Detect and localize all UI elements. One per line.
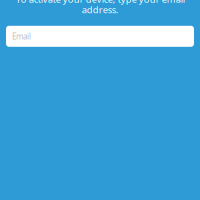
button[interactable]: Email address (6, 26, 194, 47)
staticText: address. (81, 3, 118, 16)
staticText: To activate your device, type your email (15, 0, 184, 5)
staticText: Email (12, 31, 31, 42)
